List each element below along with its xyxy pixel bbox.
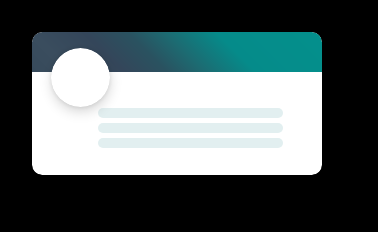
button[interactable]: Profile card	[32, 32, 322, 175]
button[interactable]: Profile picture	[51, 48, 110, 107]
